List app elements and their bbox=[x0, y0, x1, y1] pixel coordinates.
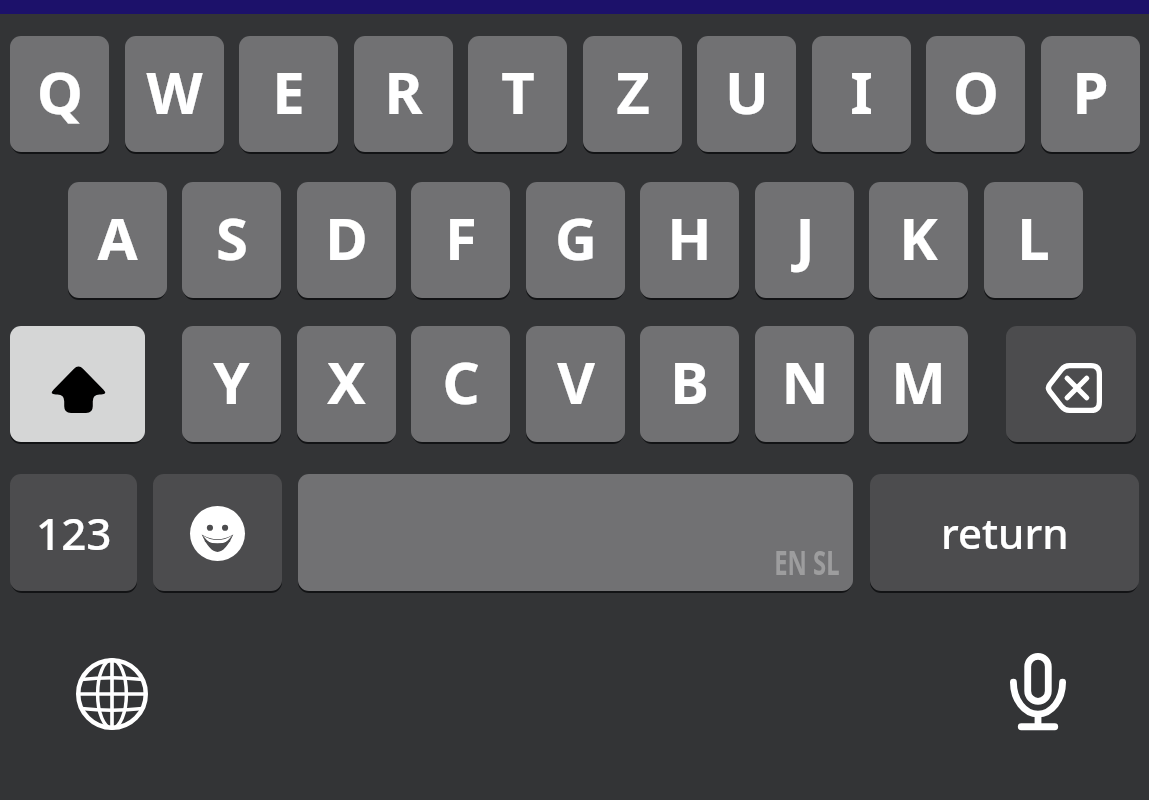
staticText: Q bbox=[37, 52, 83, 131]
button[interactable]: B bbox=[640, 326, 739, 442]
button[interactable]: Z bbox=[583, 36, 682, 152]
staticText: 123 bbox=[36, 503, 112, 563]
button[interactable]: O bbox=[926, 36, 1025, 152]
staticText: C bbox=[442, 342, 480, 421]
button[interactable]: U bbox=[697, 36, 796, 152]
button[interactable]: X bbox=[297, 326, 396, 442]
staticText: E bbox=[272, 52, 305, 131]
staticText: return bbox=[941, 504, 1069, 561]
button[interactable]: D bbox=[297, 182, 396, 298]
button[interactable]: Y bbox=[182, 326, 281, 442]
button[interactable]: N bbox=[755, 326, 854, 442]
button[interactable]: E bbox=[239, 36, 338, 152]
button[interactable]: S bbox=[182, 182, 281, 298]
staticText: A bbox=[97, 198, 138, 277]
staticText: L bbox=[1017, 198, 1050, 277]
staticText: G bbox=[555, 198, 597, 277]
button[interactable]: V bbox=[526, 326, 625, 442]
staticText: I bbox=[850, 52, 873, 131]
staticText: K bbox=[899, 198, 938, 277]
staticText: J bbox=[795, 198, 815, 277]
staticText: D bbox=[325, 198, 368, 277]
button[interactable]: 123 bbox=[10, 474, 137, 591]
button[interactable]: Q bbox=[10, 36, 109, 152]
button[interactable]: J bbox=[755, 182, 854, 298]
staticText: O bbox=[953, 52, 999, 131]
staticText: S bbox=[216, 198, 248, 277]
staticText: N bbox=[781, 342, 829, 421]
staticText: V bbox=[557, 342, 595, 421]
button[interactable]: F bbox=[411, 182, 510, 298]
button[interactable]: Backspace bbox=[1006, 326, 1136, 442]
button[interactable]: K bbox=[869, 182, 968, 298]
button[interactable]: Space bbox=[298, 474, 853, 591]
staticText: X bbox=[327, 342, 366, 421]
button[interactable]: Change keyboard language bbox=[62, 644, 162, 744]
staticText: F bbox=[445, 198, 477, 277]
button[interactable]: M bbox=[869, 326, 968, 442]
staticText: U bbox=[725, 52, 769, 131]
button[interactable]: P bbox=[1041, 36, 1140, 152]
staticText: R bbox=[384, 52, 423, 131]
staticText: W bbox=[146, 52, 203, 131]
button[interactable]: T bbox=[468, 36, 567, 152]
button[interactable]: I bbox=[812, 36, 911, 152]
staticText: M bbox=[891, 342, 946, 421]
staticText: T bbox=[501, 52, 535, 131]
button[interactable]: Voice input bbox=[988, 643, 1088, 741]
button[interactable]: W bbox=[125, 36, 224, 152]
button[interactable]: L bbox=[984, 182, 1083, 298]
button[interactable]: C bbox=[411, 326, 510, 442]
button[interactable]: A bbox=[68, 182, 167, 298]
staticText: EN SL bbox=[774, 539, 840, 585]
button[interactable]: Emoji keyboard bbox=[153, 474, 282, 591]
button[interactable]: R bbox=[354, 36, 453, 152]
button[interactable]: return bbox=[870, 474, 1139, 591]
button[interactable]: H bbox=[640, 182, 739, 298]
staticText: H bbox=[667, 198, 712, 277]
staticText: B bbox=[670, 342, 709, 421]
button[interactable]: G bbox=[526, 182, 625, 298]
staticText: Z bbox=[616, 52, 650, 131]
staticText: P bbox=[1072, 52, 1109, 131]
button[interactable]: Shift bbox=[10, 326, 145, 442]
staticText: Y bbox=[213, 342, 250, 421]
